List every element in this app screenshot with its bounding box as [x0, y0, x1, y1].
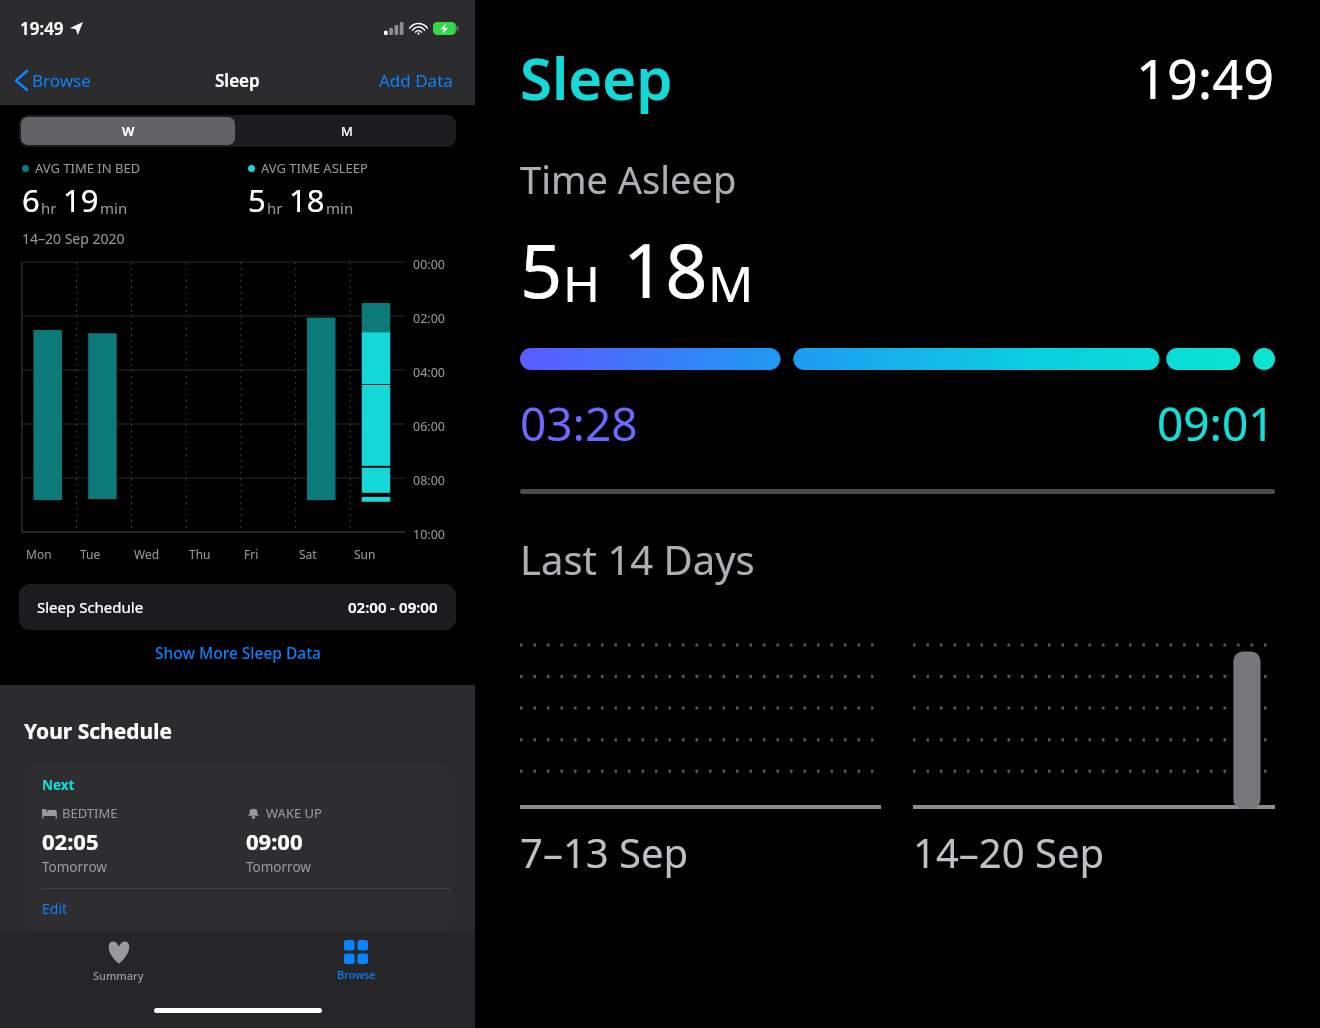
staticText: 09:01 [1157, 392, 1275, 455]
staticText: 02:00 - 09:00 [348, 597, 438, 617]
staticText: 14–20 Sep [913, 825, 1105, 879]
staticText: BEDTIME [62, 804, 118, 822]
button[interactable]: Browse [12, 65, 95, 96]
staticText: 19:49 [20, 17, 64, 40]
staticText: Thu [189, 546, 211, 562]
staticText: Tomorrow [246, 858, 311, 876]
button[interactable]: M [237, 115, 456, 147]
staticText: Time Asleep [520, 153, 737, 205]
staticText: Your Schedule [24, 717, 173, 746]
staticText: min [100, 198, 128, 218]
staticText: M [341, 122, 353, 140]
staticText: Sleep [520, 38, 673, 117]
staticText: 08:00 [413, 472, 445, 489]
staticText: 14–20 Sep 2020 [22, 229, 125, 248]
staticText: 18 [289, 179, 325, 221]
staticText: 5 [520, 219, 563, 320]
staticText: Sleep Schedule [37, 597, 144, 617]
staticText: Wed [134, 546, 160, 562]
staticText: Last 14 Days [520, 532, 755, 586]
button[interactable]: Sleep Schedule [19, 584, 456, 630]
staticText: AVG TIME ASLEEP [261, 159, 368, 177]
staticText: Add Data [379, 69, 453, 92]
staticText: AVG TIME IN BED [35, 159, 141, 177]
staticText: 19:49 [1136, 41, 1275, 115]
staticText: 7–13 Sep [520, 825, 689, 879]
staticText: Tue [80, 546, 101, 562]
staticText: Sleep [215, 69, 260, 92]
staticText: Next [42, 776, 75, 794]
staticText: Sun [354, 546, 376, 562]
button[interactable]: Summary [0, 930, 237, 992]
staticText: W [122, 122, 135, 140]
staticText: Browse [32, 69, 91, 92]
staticText: 03:28 [520, 392, 638, 455]
staticText: 02:05 [42, 826, 99, 856]
staticText: 00:00 [413, 256, 445, 273]
staticText: Mon [26, 546, 52, 562]
staticText: 09:00 [246, 826, 303, 856]
staticText: Show More Sleep Data [155, 642, 321, 663]
staticText: Summary [93, 968, 144, 983]
staticText: 04:00 [413, 364, 445, 381]
staticText: 19 [63, 179, 99, 221]
staticText: Tomorrow [42, 858, 107, 876]
staticText: 02:00 [413, 310, 445, 327]
staticText: 06:00 [413, 418, 445, 435]
staticText: Edit [42, 899, 68, 918]
staticText: hr [41, 198, 57, 218]
staticText: M [708, 249, 754, 317]
staticText: 5 [248, 179, 266, 221]
other: Summary [106, 939, 132, 965]
button[interactable]: Show More Sleep Data [0, 642, 475, 663]
button[interactable]: W [21, 117, 235, 145]
staticText: Fri [244, 546, 259, 562]
staticText: 6 [22, 179, 40, 221]
staticText: min [326, 198, 354, 218]
staticText: Sat [299, 546, 317, 562]
button[interactable]: Add Data [375, 65, 457, 96]
staticText: 18 [623, 219, 708, 320]
staticText: WAKE UP [266, 804, 322, 822]
other: Browse [344, 940, 368, 964]
button[interactable]: Browse [237, 930, 475, 992]
staticText: Browse [337, 967, 376, 982]
staticText: hr [267, 198, 283, 218]
button[interactable]: Next [24, 764, 451, 932]
staticText: H [563, 249, 601, 317]
staticText: 10:00 [413, 526, 445, 543]
